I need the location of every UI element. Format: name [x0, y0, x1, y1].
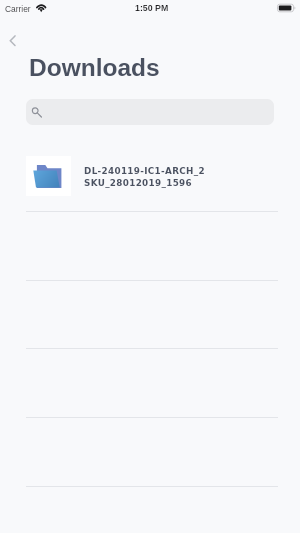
- staticText: DL-240119-IC1-ARCH_2: [84, 166, 205, 176]
- staticText: Downloads: [29, 54, 160, 81]
- button[interactable]: Search: [26, 99, 274, 125]
- staticText: Carrier: [5, 4, 31, 13]
- staticText: 1:50 PM: [135, 3, 169, 13]
- staticText: SKU_28012019_1596: [84, 178, 192, 188]
- button[interactable]: DL-240119-IC1-ARCH_2: [0, 152, 300, 211]
- button[interactable]: Back: [2, 29, 24, 52]
